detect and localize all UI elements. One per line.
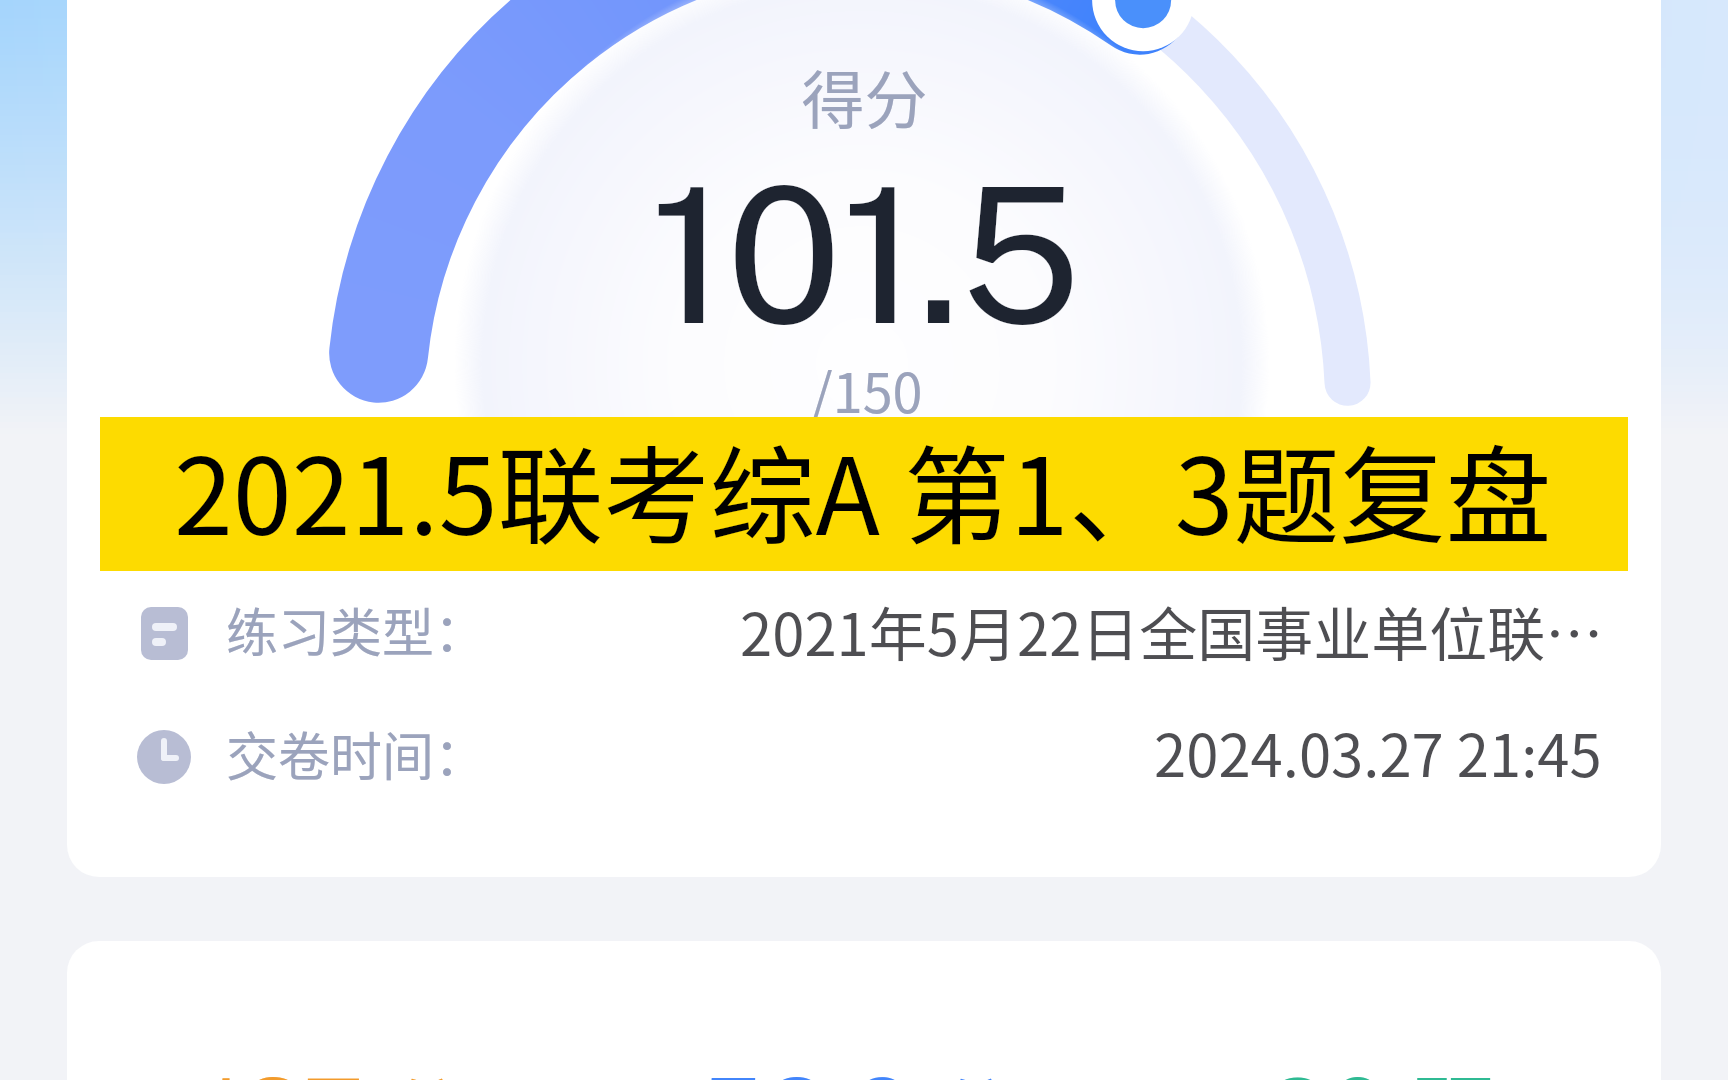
button[interactable] xyxy=(67,941,1661,1080)
button[interactable]: 交卷时间 xyxy=(139,728,1597,786)
button[interactable] xyxy=(100,417,1628,571)
button[interactable]: 练习类型 xyxy=(139,604,1597,662)
